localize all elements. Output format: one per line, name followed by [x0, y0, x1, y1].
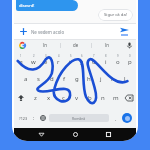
button[interactable]: 3: [40, 50, 52, 69]
button[interactable]: ?123: [16, 108, 30, 128]
staticText: Română: [72, 116, 86, 121]
button[interactable]: Change language: [38, 108, 47, 128]
button[interactable]: Emoji: [30, 108, 38, 128]
button[interactable]: v: [70, 88, 83, 108]
button[interactable]: Voice input: [122, 40, 136, 50]
button[interactable]: b: [83, 88, 96, 108]
button[interactable]: h: [83, 69, 95, 88]
button[interactable]: 6: [76, 50, 88, 69]
button[interactable]: Română: [49, 114, 109, 122]
staticText: r: [57, 58, 60, 66]
button[interactable]: 2: [27, 50, 40, 69]
button[interactable]: z: [28, 88, 42, 108]
button[interactable]: Google search: [14, 40, 30, 50]
staticText: m: [113, 94, 119, 102]
staticText: p: [128, 58, 132, 66]
button[interactable]: 7: [88, 50, 100, 69]
staticText: d: [50, 75, 54, 83]
button[interactable]: Add attachment: [18, 26, 29, 37]
button[interactable]: s: [32, 69, 45, 88]
staticText: de: [73, 42, 79, 48]
button[interactable]: în: [92, 40, 122, 50]
button[interactable]: 0: [124, 50, 136, 69]
button[interactable]: 5: [64, 50, 76, 69]
button[interactable]: m: [109, 88, 122, 108]
staticText: 0: [129, 54, 131, 58]
staticText: h: [87, 75, 91, 83]
staticText: k: [111, 75, 115, 83]
button[interactable]: c: [56, 88, 70, 108]
button[interactable]: k: [107, 69, 119, 88]
staticText: v: [75, 94, 79, 102]
staticText: 4: [58, 54, 60, 58]
button[interactable]: Recents: [102, 128, 115, 141]
staticText: 7: [93, 54, 95, 58]
button[interactable]: a: [19, 69, 32, 88]
staticText: c: [62, 94, 65, 102]
button[interactable]: Send: [117, 24, 132, 39]
button[interactable]: d: [45, 69, 58, 88]
staticText: ?123: [19, 116, 28, 121]
staticText: 9: [117, 54, 119, 58]
staticText: a: [24, 75, 28, 83]
staticText: n: [101, 94, 105, 102]
button[interactable]: f: [58, 69, 71, 88]
staticText: e: [44, 58, 48, 66]
staticText: j: [100, 75, 102, 83]
button[interactable]: Home: [69, 128, 82, 141]
button[interactable]: g: [71, 69, 83, 88]
staticText: în: [105, 42, 109, 48]
button[interactable]: Enter: [120, 108, 134, 128]
button[interactable]: .: [111, 108, 120, 128]
staticText: l: [124, 75, 126, 83]
staticText: i: [105, 58, 107, 66]
staticText: f: [63, 75, 66, 83]
staticText: x: [47, 94, 51, 102]
staticText: q: [19, 58, 23, 66]
staticText: 1: [20, 54, 22, 58]
button[interactable]: în: [30, 40, 60, 50]
staticText: t: [69, 58, 72, 66]
staticText: Sigur că da!: [104, 12, 127, 18]
staticText: g: [75, 75, 79, 83]
staticText: 8: [105, 54, 107, 58]
staticText: o: [116, 58, 120, 66]
staticText: 6: [81, 54, 83, 58]
button[interactable]: Backspace: [122, 88, 136, 108]
button[interactable]: 9: [112, 50, 124, 69]
button[interactable]: 8: [100, 50, 112, 69]
button[interactable]: Ne vedem acolo: [31, 24, 117, 39]
staticText: b: [88, 94, 92, 102]
button[interactable]: j: [95, 69, 107, 88]
button[interactable]: Sigur că da!: [98, 9, 133, 21]
staticText: în: [43, 42, 47, 48]
button[interactable]: Back: [35, 128, 48, 141]
button[interactable]: 4: [52, 50, 64, 69]
staticText: u: [92, 58, 96, 66]
staticText: z: [34, 94, 37, 102]
staticText: 5: [70, 54, 72, 58]
staticText: y: [80, 58, 84, 66]
staticText: disesrd!: [19, 3, 35, 9]
staticText: .: [115, 115, 117, 122]
button[interactable]: 1: [14, 50, 27, 69]
button[interactable]: Shift: [14, 88, 28, 108]
staticText: w: [31, 58, 36, 66]
button[interactable]: de: [61, 40, 91, 50]
staticText: Ne vedem acolo: [31, 29, 65, 35]
staticText: 2: [33, 54, 35, 58]
staticText: :: [33, 115, 35, 122]
button[interactable]: x: [42, 88, 56, 108]
button[interactable]: l: [119, 69, 131, 88]
button[interactable]: n: [96, 88, 109, 108]
button[interactable]: disesrd!: [16, 0, 78, 11]
staticText: 3: [45, 54, 47, 58]
staticText: s: [37, 75, 40, 83]
